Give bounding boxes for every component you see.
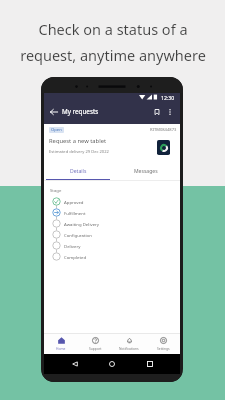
button[interactable]: Support: [78, 333, 112, 354]
staticText: Completed: [64, 254, 87, 260]
button[interactable]: Back: [68, 357, 82, 371]
button[interactable]: Back: [48, 106, 59, 117]
staticText: Details: [70, 168, 87, 175]
button[interactable]: Recent apps: [143, 357, 157, 371]
button[interactable]: Bookmark: [151, 106, 162, 117]
staticText: Messages: [134, 168, 158, 175]
button[interactable]: More options: [165, 107, 174, 116]
button[interactable]: Home: [44, 333, 78, 354]
staticText: Stage: [50, 187, 62, 193]
button[interactable]: Messages: [112, 162, 180, 180]
staticText: request, anytime anywhere: [20, 45, 206, 65]
staticText: Open: [51, 127, 62, 133]
staticText: Settings: [157, 346, 170, 350]
staticText: My requests: [62, 107, 99, 116]
button[interactable]: Settings: [146, 333, 180, 354]
staticText: Delivery: [64, 243, 81, 249]
staticText: 12:30: [161, 94, 175, 101]
button[interactable]: Notifications: [112, 333, 146, 354]
button[interactable]: Home: [105, 357, 119, 371]
staticText: Request a new tablet: [49, 137, 106, 145]
staticText: Approved: [64, 199, 84, 205]
staticText: RITM0844873: [150, 127, 177, 133]
staticText: Awaiting Delivery: [64, 221, 100, 227]
staticText: Support: [89, 346, 102, 350]
staticText: Notifications: [119, 346, 139, 350]
staticText: Check on a status of a: [38, 19, 188, 39]
button[interactable]: Details: [44, 162, 112, 180]
staticText: Configuration: [64, 232, 92, 238]
staticText: Home: [56, 346, 66, 350]
staticText: Fulfillment: [64, 210, 86, 216]
staticText: Estimated delivery 29 Dec 2022: [49, 149, 109, 155]
